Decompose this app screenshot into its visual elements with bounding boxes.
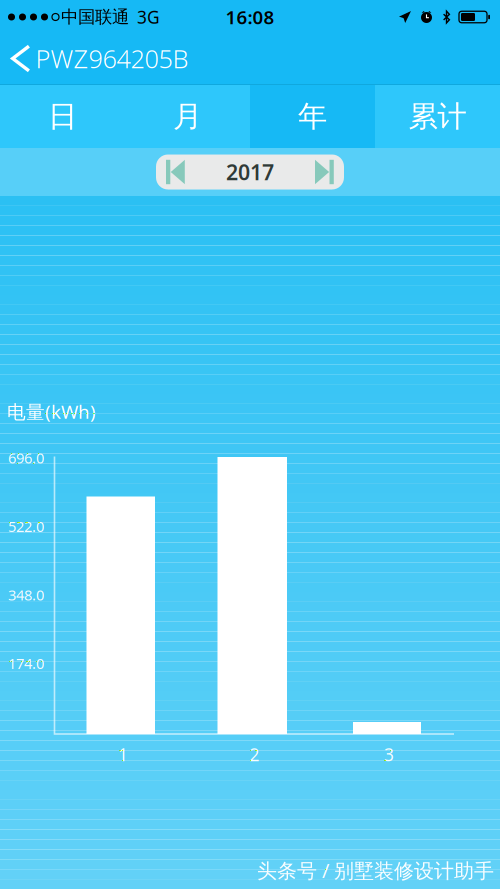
button[interactable]: 累计 [375,85,500,148]
staticText: 1 [118,743,128,766]
button[interactable]: PWZ964205B [0,38,199,85]
staticText: 2 [249,743,259,766]
staticText: 2017 [226,158,274,186]
button[interactable]: Previous year [156,154,195,189]
staticText: 年 [298,98,327,134]
staticText: 174.0 [8,653,44,673]
staticText: 累计 [408,98,466,134]
staticText: 头条号 / 别墅装修设计助手 [257,857,494,884]
button[interactable]: 日 [0,85,125,148]
staticText: 电量(kWh) [7,399,96,424]
staticText: 日 [48,98,77,134]
staticText: 348.0 [8,585,44,604]
staticText: 3G [137,5,160,28]
button[interactable]: 年 [250,85,375,148]
staticText: 696.0 [8,448,44,467]
staticText: 522.0 [8,516,44,536]
staticText: 3 [384,743,394,766]
button[interactable]: 月 [125,85,250,148]
staticText: 16:08 [225,5,274,29]
staticText: PWZ964205B [36,42,189,75]
button[interactable]: Next year [305,154,344,189]
staticText: 月 [173,98,202,134]
staticText: 中国联通 [61,6,129,28]
